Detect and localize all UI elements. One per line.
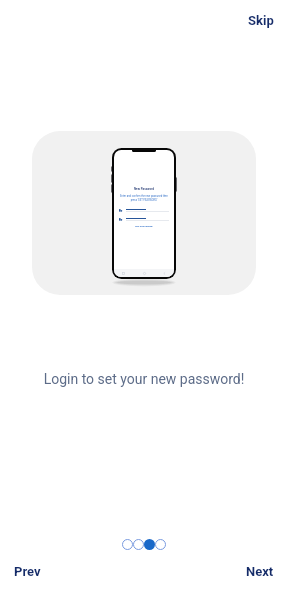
button[interactable]: Page 3 <box>144 539 155 550</box>
button[interactable]: Page 2 <box>133 539 144 550</box>
button[interactable]: Next <box>240 560 280 583</box>
staticText: New Password <box>134 187 154 191</box>
button[interactable]: Page 4 <box>155 539 166 550</box>
staticText: SET PASSWORD <box>135 225 153 228</box>
staticText: Login to set your new password! <box>0 371 288 387</box>
button[interactable]: Prev <box>8 560 47 583</box>
button[interactable]: Page 1 <box>122 539 133 550</box>
staticText: Skip <box>248 13 274 28</box>
staticText: Prev <box>14 564 41 579</box>
staticText: Enter and confirm the new password then … <box>120 195 168 201</box>
button[interactable]: Skip <box>242 9 280 32</box>
staticText: Next <box>246 564 274 579</box>
